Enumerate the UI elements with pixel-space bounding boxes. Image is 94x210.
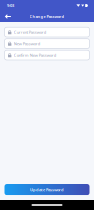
button[interactable]: Current Password [4,27,89,37]
staticText: Update Password [30,187,64,192]
staticText: Confirm New Password [14,52,56,58]
button[interactable]: Confirm New Password [4,50,89,60]
button[interactable]: New Password [4,39,89,48]
staticText: New Password [14,41,40,46]
staticText: Change Password [29,14,64,19]
staticText: Current Password [14,29,46,35]
button[interactable]: Back [0,11,14,22]
button[interactable]: Update Password [4,184,89,195]
staticText: 9:03 [7,3,14,8]
